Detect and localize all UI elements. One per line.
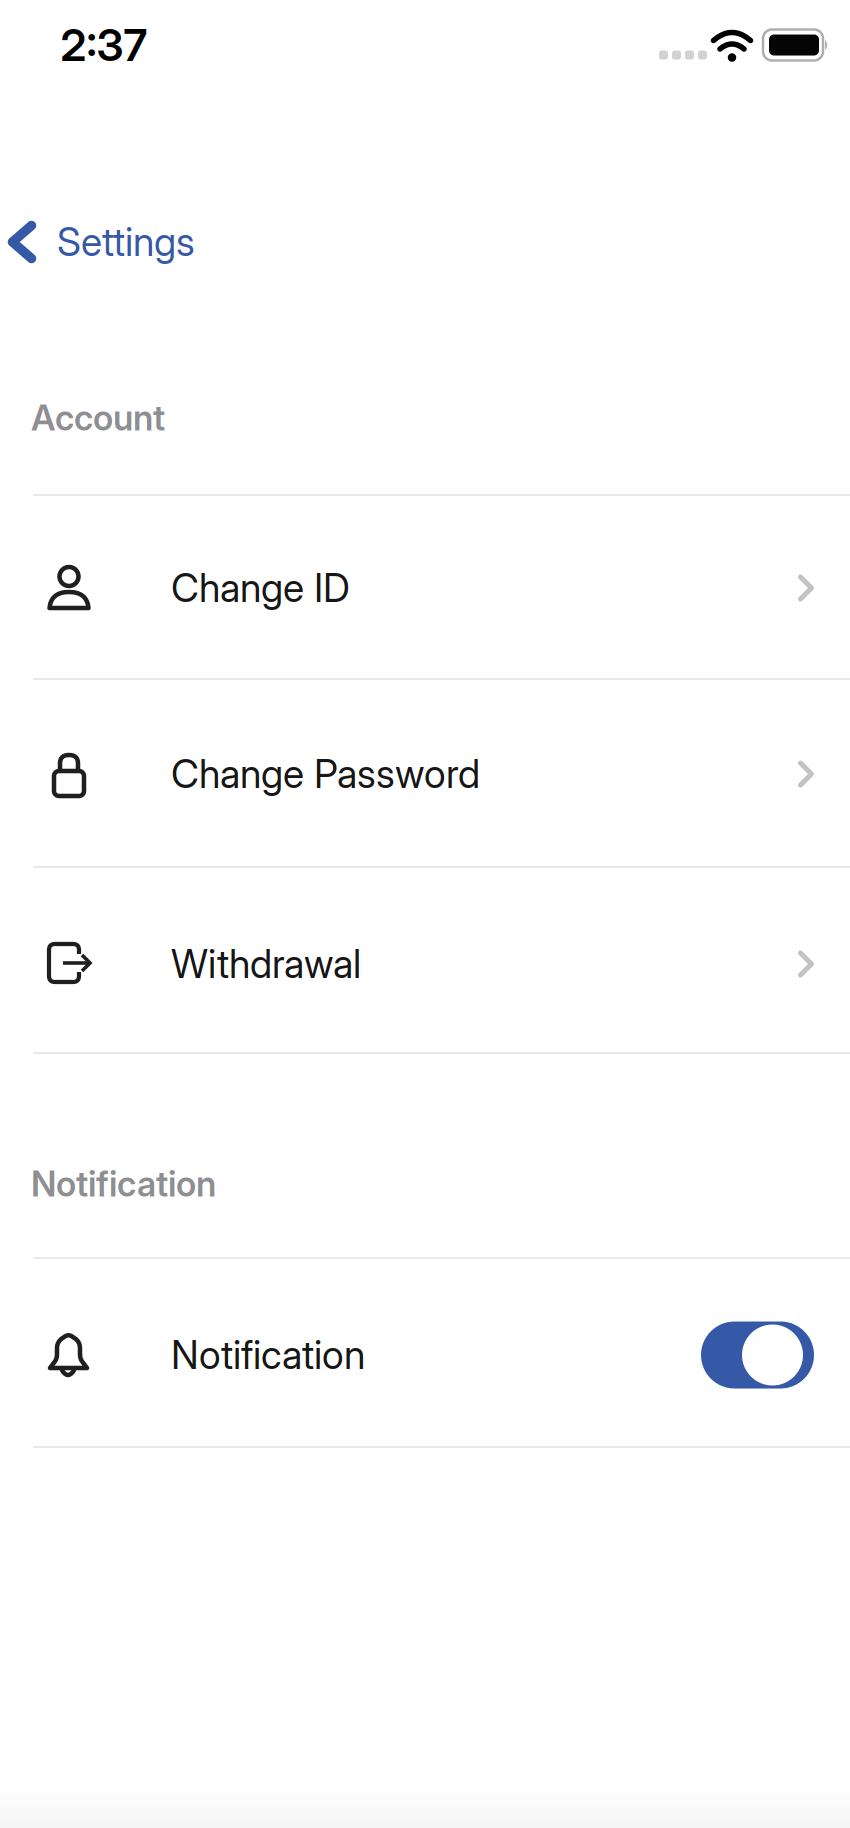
staticText: Change Password bbox=[171, 751, 480, 797]
button[interactable]: Change Password bbox=[0, 681, 850, 867]
staticText: Change ID bbox=[171, 565, 350, 611]
button[interactable]: Notification toggle, on bbox=[0, 1261, 850, 1448]
staticText: Notification bbox=[31, 1163, 216, 1205]
button[interactable]: Back to Settings bbox=[0, 219, 195, 265]
button[interactable]: Withdrawal bbox=[0, 872, 850, 1056]
staticText: Account bbox=[31, 397, 165, 439]
staticText: 2:37 bbox=[60, 18, 147, 72]
staticText: Notification bbox=[171, 1332, 365, 1378]
staticText: Settings bbox=[57, 219, 195, 265]
staticText: Withdrawal bbox=[171, 941, 361, 987]
button[interactable]: Change ID bbox=[0, 497, 850, 679]
